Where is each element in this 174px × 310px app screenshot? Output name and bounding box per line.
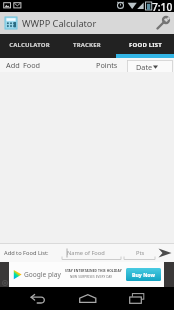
staticText: Food: [23, 60, 41, 70]
staticText: Add to Food List:: [4, 249, 49, 257]
button[interactable]: Date: [127, 60, 173, 73]
staticText: Date: [136, 62, 153, 72]
button[interactable]: Buy Now: [126, 268, 161, 281]
staticText: Add: [6, 60, 20, 70]
button[interactable]: Back: [17, 287, 58, 310]
button[interactable]: Add to food list: [156, 244, 174, 262]
staticText: TRACKER: [73, 41, 101, 49]
button[interactable]: TRACKER: [58, 34, 116, 54]
button[interactable]: Google play: [9, 262, 164, 287]
staticText: 7:10: [152, 0, 173, 12]
button[interactable]: FOOD LIST: [116, 34, 174, 54]
staticText: Google play: [24, 270, 61, 279]
button[interactable]: Home: [67, 287, 108, 310]
staticText: STAY ENTERTAINED THIS HOLIDAY: [65, 269, 122, 273]
staticText: Buy Now: [132, 271, 155, 278]
staticText: FOOD LIST: [129, 41, 162, 49]
button[interactable]: Settings: [150, 12, 174, 34]
button[interactable]: Recent apps: [117, 287, 158, 310]
staticText: Points: [96, 60, 118, 70]
button[interactable]: CALCULATOR: [0, 34, 58, 54]
staticText: Name of Food: [67, 249, 105, 257]
button[interactable]: Name of Food: [62, 246, 121, 260]
button[interactable]: Pts: [124, 246, 155, 260]
staticText: CALCULATOR: [9, 41, 50, 49]
staticText: Pts: [136, 249, 145, 257]
staticText: NEW SURPRISES EVERY DAY: [70, 275, 113, 279]
staticText: WWPP Calculator: [22, 17, 97, 30]
